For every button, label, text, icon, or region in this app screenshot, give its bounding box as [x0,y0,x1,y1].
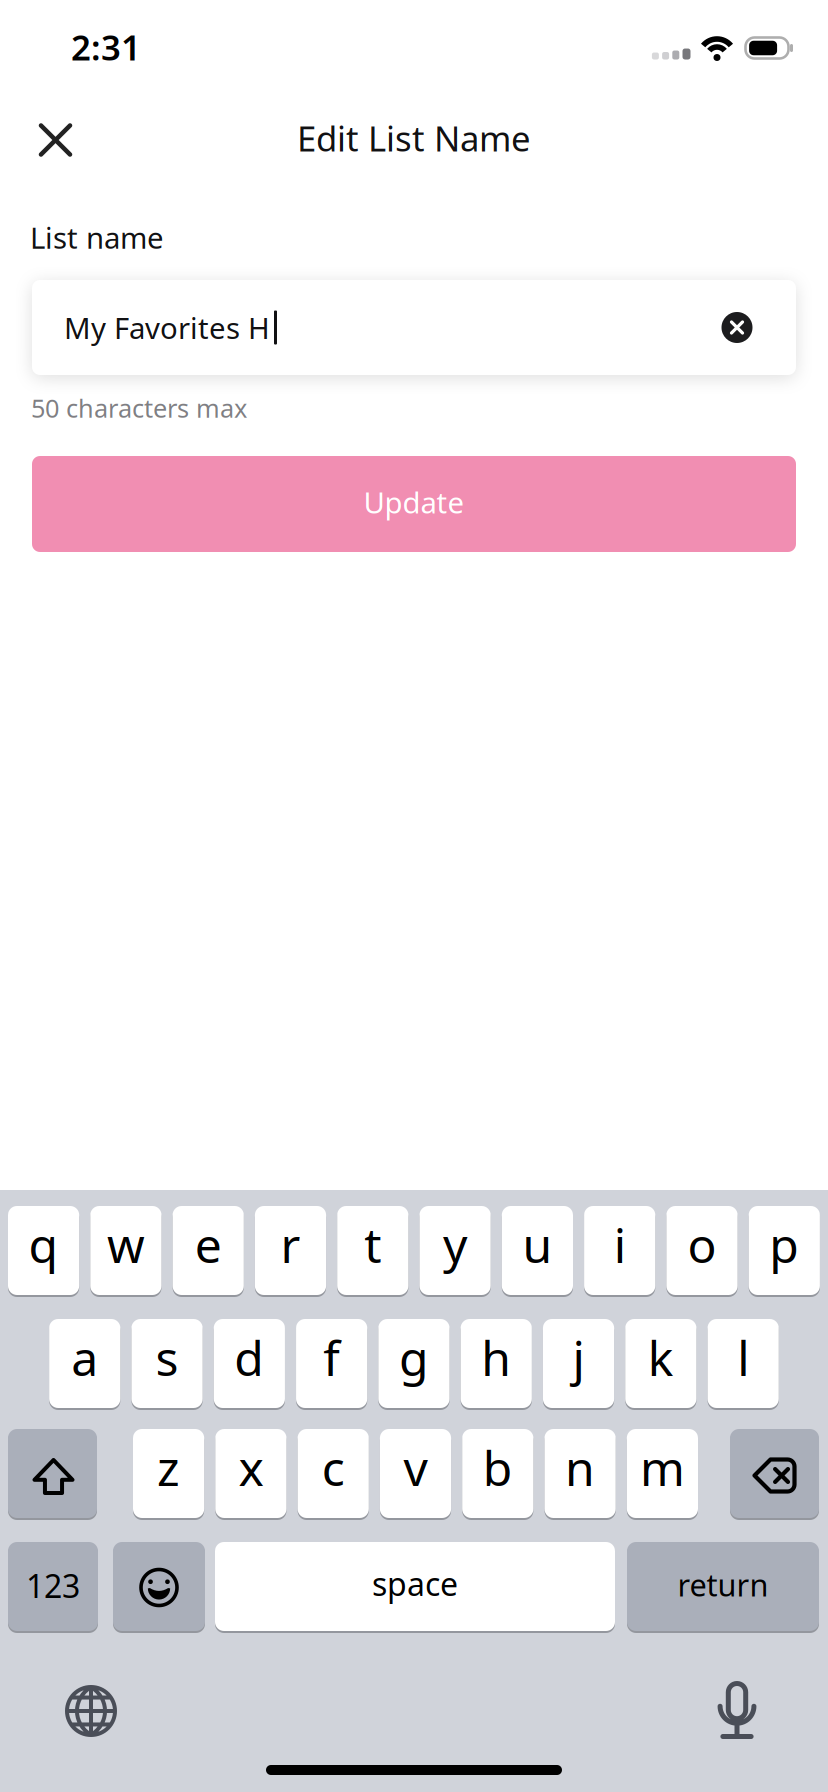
staticText: Update [363,482,464,521]
button[interactable]: c [298,1429,369,1518]
button[interactable]: Shift [8,1429,97,1518]
staticText: My Favorites H [64,308,270,347]
staticText: b [483,1436,513,1499]
staticText: q [29,1213,59,1276]
button[interactable]: d [214,1319,285,1408]
staticText: j [573,1326,585,1389]
staticText: 50 characters max [31,391,247,425]
button[interactable]: Emoji [113,1542,205,1631]
staticText: d [234,1326,264,1389]
staticText: k [648,1326,674,1389]
button[interactable]: Clear text [714,304,760,350]
staticText: 2:31 [71,24,141,70]
button[interactable]: s [131,1319,203,1408]
button[interactable]: Update [32,456,796,552]
staticText: y [443,1213,467,1276]
button[interactable]: w [90,1206,161,1295]
staticText: s [155,1326,178,1389]
staticText: space [372,1562,458,1605]
staticText: g [399,1326,429,1389]
staticText: v [403,1436,427,1499]
button[interactable]: e [173,1206,244,1295]
staticText: i [614,1213,626,1276]
staticText: Edit List Name [297,115,531,161]
button[interactable]: o [666,1206,738,1295]
button[interactable]: a [49,1319,120,1408]
staticText: t [364,1213,381,1276]
button[interactable]: h [461,1319,532,1408]
staticText: List name [30,218,164,257]
button[interactable]: Dictation [701,1671,772,1748]
staticText: n [565,1436,595,1499]
button[interactable]: space [215,1542,615,1631]
staticText: l [737,1326,749,1389]
staticText: c [322,1436,345,1499]
staticText: o [687,1213,716,1276]
button[interactable]: Delete [730,1429,819,1518]
button[interactable]: 123 [8,1542,98,1631]
button[interactable]: return [627,1542,819,1631]
button[interactable]: k [625,1319,696,1408]
button[interactable]: b [462,1429,533,1518]
button[interactable]: Close [23,110,84,171]
button[interactable]: l [707,1319,779,1408]
staticText: return [677,1564,768,1605]
staticText: e [195,1213,222,1276]
button[interactable]: g [378,1319,449,1408]
staticText: m [640,1436,685,1499]
button[interactable]: j [543,1319,614,1408]
button[interactable]: x [215,1429,286,1518]
staticText: f [323,1326,340,1389]
button[interactable]: My Favorites H [32,280,796,375]
staticText: x [238,1436,263,1499]
button[interactable]: z [133,1429,204,1518]
button[interactable]: t [337,1206,408,1295]
button[interactable]: u [502,1206,573,1295]
button[interactable]: Next keyboard [55,1675,127,1747]
staticText: 123 [26,1564,80,1607]
staticText: p [769,1213,799,1276]
button[interactable]: r [255,1206,326,1295]
staticText: h [481,1326,511,1389]
staticText: u [522,1213,552,1276]
button[interactable]: p [749,1206,820,1295]
button[interactable]: m [627,1429,698,1518]
button[interactable]: v [380,1429,451,1518]
staticText: r [280,1213,300,1276]
button[interactable]: i [584,1206,655,1295]
staticText: a [71,1326,98,1389]
staticText: z [157,1436,180,1499]
button[interactable]: y [419,1206,491,1295]
button[interactable]: f [296,1319,367,1408]
button[interactable]: n [544,1429,616,1518]
staticText: w [107,1213,145,1276]
button[interactable]: q [8,1206,79,1295]
